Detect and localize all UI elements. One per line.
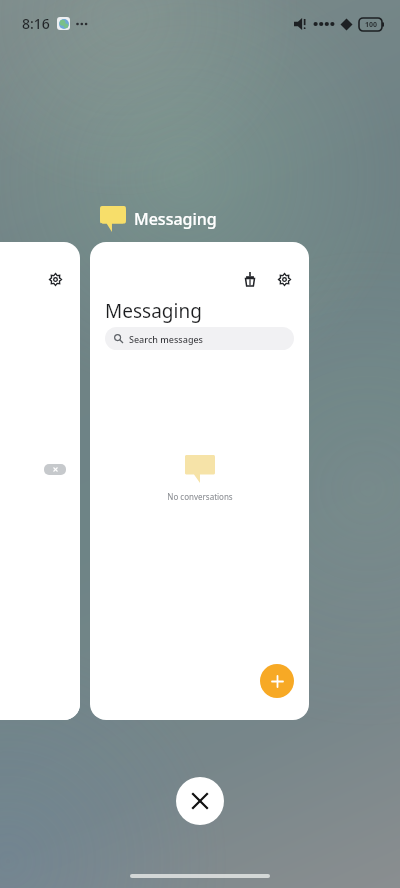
- button[interactable]: Search messages: [105, 327, 294, 350]
- button[interactable]: Settings: [0, 242, 80, 720]
- button[interactable]: Settings: [273, 268, 295, 290]
- staticText: Messaging: [105, 298, 202, 324]
- button[interactable]: Backspace: [44, 464, 66, 475]
- button[interactable]: Clean up: [90, 242, 309, 720]
- staticText: Messaging: [134, 208, 217, 230]
- button[interactable]: Settings: [44, 268, 66, 290]
- button[interactable]: Close all: [176, 777, 224, 825]
- staticText: 8:16: [22, 14, 50, 33]
- staticText: 100: [365, 20, 378, 30]
- staticText: No conversations: [167, 491, 233, 502]
- staticText: Search messages: [129, 333, 203, 345]
- button[interactable]: Backspace: [0, 450, 80, 720]
- button[interactable]: Clean up: [239, 268, 261, 290]
- button[interactable]: New conversation: [260, 664, 294, 698]
- button[interactable]: Messaging: [100, 206, 217, 232]
